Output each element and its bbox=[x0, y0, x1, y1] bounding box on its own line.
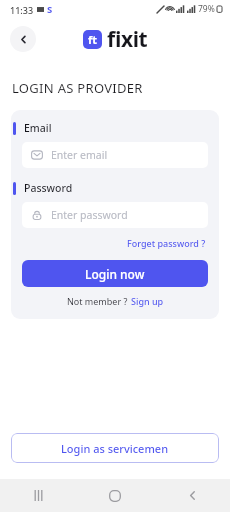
staticText: Not member ? bbox=[67, 295, 128, 307]
staticText: Sign up bbox=[131, 295, 164, 307]
staticText: LOGIN AS PROVIDER bbox=[12, 79, 143, 97]
staticText: Enter password bbox=[51, 208, 128, 222]
button[interactable]: Home bbox=[96, 479, 134, 512]
staticText: Email bbox=[24, 121, 52, 135]
staticText: Login now bbox=[85, 266, 145, 282]
button[interactable]: Back bbox=[173, 479, 211, 512]
button[interactable]: Forget password ? bbox=[125, 235, 208, 251]
staticText: fixit bbox=[107, 25, 148, 54]
staticText: 11:33 bbox=[10, 4, 34, 16]
staticText: 79% bbox=[198, 3, 215, 15]
staticText: Enter email bbox=[51, 148, 108, 162]
staticText: Forget password ? bbox=[127, 237, 206, 249]
staticText: S bbox=[47, 3, 53, 16]
button[interactable]: Recent apps bbox=[19, 479, 57, 512]
button[interactable]: Enter email bbox=[22, 142, 208, 168]
staticText: Login as servicemen bbox=[61, 441, 169, 456]
staticText: ft bbox=[88, 32, 98, 47]
button[interactable]: Login now bbox=[22, 260, 208, 287]
staticText: Password bbox=[24, 181, 73, 195]
button[interactable]: Sign up bbox=[131, 295, 164, 307]
button[interactable]: Back bbox=[10, 26, 36, 52]
button[interactable]: Enter password bbox=[22, 202, 208, 228]
button[interactable]: Login as servicemen bbox=[11, 433, 219, 463]
